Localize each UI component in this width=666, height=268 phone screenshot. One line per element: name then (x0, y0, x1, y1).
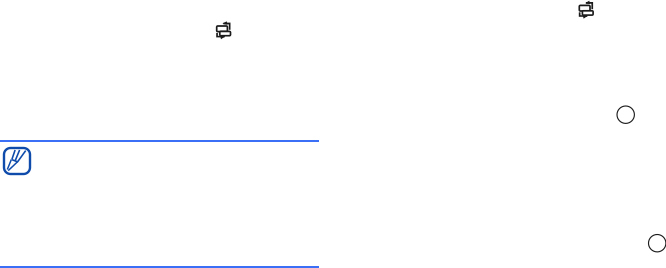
button[interactable]: Rotate screen (579, 1, 594, 19)
button[interactable]: Rotate screen (216, 21, 231, 40)
